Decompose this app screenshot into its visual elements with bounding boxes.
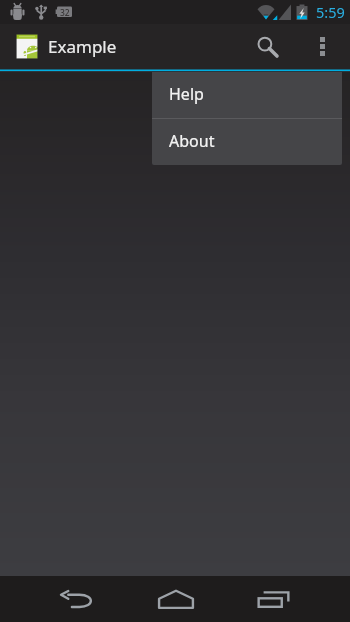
staticText: 32: [60, 7, 70, 19]
staticText: 5:59: [316, 2, 345, 22]
button[interactable]: Search: [246, 24, 291, 69]
button[interactable]: More options: [301, 24, 350, 69]
button[interactable]: Example: [0, 24, 132, 69]
staticText: Help: [169, 83, 204, 105]
staticText: About: [169, 130, 215, 152]
button[interactable]: About: [152, 119, 342, 165]
button[interactable]: Help: [152, 72, 342, 118]
button[interactable]: Recent apps: [239, 576, 308, 622]
staticText: Example: [48, 35, 117, 58]
button[interactable]: Home: [140, 576, 212, 622]
button[interactable]: Back: [43, 576, 112, 622]
